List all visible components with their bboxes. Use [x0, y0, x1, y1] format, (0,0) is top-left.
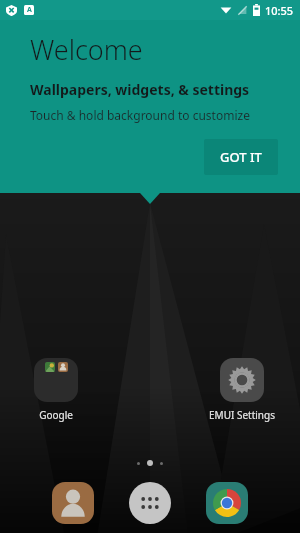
staticText: A: [27, 5, 32, 15]
button[interactable]: EMUI Settings: [196, 358, 288, 422]
button[interactable]: Google: [12, 358, 100, 422]
staticText: EMUI Settings: [209, 408, 275, 422]
staticText: Google: [39, 408, 73, 422]
staticText: Welcome: [30, 31, 143, 68]
staticText: 10:55: [265, 3, 294, 18]
button[interactable]: Apps: [129, 482, 171, 524]
staticText: Wallpapers, widgets, & settings: [30, 80, 250, 99]
staticText: Touch & hold background to customize: [30, 107, 250, 123]
button[interactable]: Contacts: [52, 482, 94, 524]
staticText: GOT IT: [220, 148, 262, 166]
button[interactable]: GOT IT: [204, 139, 278, 175]
button[interactable]: Chrome: [206, 482, 248, 524]
